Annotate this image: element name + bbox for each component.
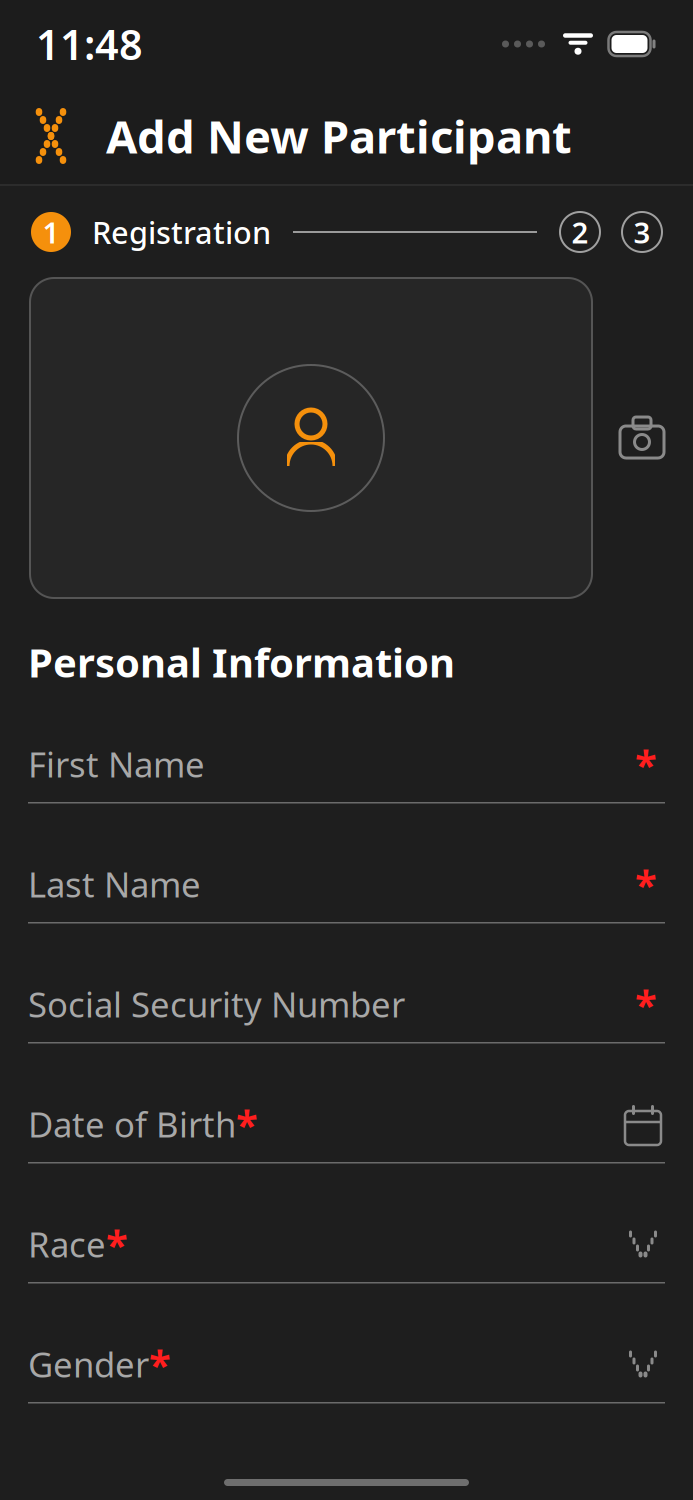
button[interactable]: 1 — [30, 211, 271, 253]
staticText: * — [236, 1097, 258, 1150]
staticText: * — [635, 737, 657, 790]
button[interactable]: Step 3 — [621, 211, 663, 253]
staticText: Personal Information — [28, 635, 455, 688]
button[interactable]: First Name — [0, 726, 693, 846]
staticText: Race — [28, 1221, 106, 1267]
button[interactable]: Gender — [0, 1326, 693, 1446]
button[interactable]: Close — [26, 109, 76, 163]
button[interactable]: Race — [0, 1206, 693, 1326]
staticText: Social Security Number — [28, 981, 405, 1027]
staticText: * — [635, 977, 657, 1030]
button[interactable]: Participant photo — [30, 278, 592, 598]
staticText: Date of Birth — [28, 1101, 236, 1147]
staticText: 3 — [633, 212, 650, 251]
button[interactable]: Last Name — [0, 846, 693, 966]
button[interactable]: Take photo — [605, 401, 679, 475]
button[interactable]: Step 2 — [559, 211, 601, 253]
staticText: * — [635, 857, 657, 910]
staticText: 2 — [571, 212, 588, 251]
staticText: 1 — [42, 212, 59, 251]
staticText: Registration — [92, 212, 271, 252]
button[interactable]: Date of Birth — [0, 1086, 693, 1206]
staticText: Add New Participant — [106, 106, 572, 166]
staticText: * — [106, 1217, 128, 1270]
staticText: Last Name — [28, 861, 201, 907]
staticText: * — [149, 1337, 171, 1390]
staticText: 11:48 — [36, 17, 143, 71]
staticText: First Name — [28, 741, 205, 787]
staticText: Gender — [28, 1341, 149, 1387]
button[interactable]: Social Security Number — [0, 966, 693, 1086]
